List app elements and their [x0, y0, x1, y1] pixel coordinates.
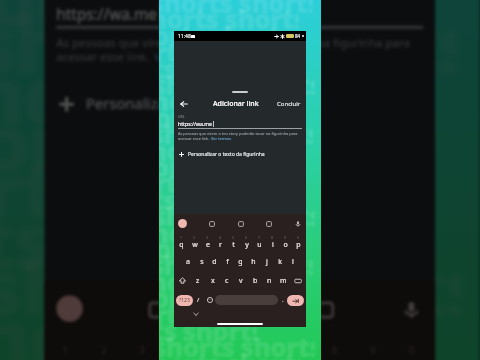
staticText: shorts shorts sh	[0, 135, 331, 239]
button[interactable]: 8	[317, 337, 355, 360]
button[interactable]: Shift	[174, 271, 190, 290]
button[interactable]: h	[247, 252, 260, 271]
button[interactable]: 1	[175, 233, 188, 252]
staticText: https://wa.me	[178, 120, 213, 127]
staticText: l	[292, 257, 294, 267]
staticText: 7	[293, 343, 302, 357]
staticText: g	[238, 257, 243, 267]
button[interactable]: c	[220, 271, 234, 290]
button[interactable]: v	[234, 271, 248, 290]
staticText: w	[192, 240, 198, 250]
button[interactable]: 2	[188, 233, 201, 252]
button[interactable]: l	[286, 252, 299, 271]
staticText: shorts shorts sh	[159, 51, 257, 86]
button[interactable]: 3	[201, 233, 214, 252]
staticText: shorts shorts sh	[159, 1, 299, 36]
staticText: d	[212, 257, 217, 267]
button[interactable]: 6	[240, 233, 253, 252]
staticText: shorts shorts sh	[159, 198, 315, 233]
staticText: shorts shorts sh	[159, 116, 313, 151]
staticText: 4	[219, 235, 222, 240]
button[interactable]: x	[205, 271, 220, 290]
staticText: shorts shorts sh	[0, 0, 456, 94]
button[interactable]: 6	[240, 337, 278, 360]
button[interactable]: Google	[56, 295, 83, 322]
staticText: r	[219, 240, 222, 250]
staticText: n	[267, 276, 272, 286]
button[interactable]: Settings	[264, 219, 273, 228]
staticText: ?123	[179, 297, 190, 304]
button[interactable]: k	[273, 252, 286, 271]
staticText: Adicionar link	[213, 99, 259, 109]
button[interactable]: Personalizar o texto da figurinha	[56, 85, 435, 121]
button[interactable]: Enter	[287, 295, 304, 306]
staticText: shorts shorts sh	[159, 149, 285, 184]
button[interactable]: Voz	[293, 219, 302, 228]
button[interactable]: /	[193, 290, 204, 310]
button[interactable]: Translate	[228, 295, 254, 322]
button[interactable]: Concluir	[277, 100, 301, 108]
button[interactable]: g	[234, 252, 247, 271]
button[interactable]: z	[190, 271, 205, 290]
button[interactable]: .	[278, 290, 287, 310]
staticText: 5	[232, 235, 235, 240]
button[interactable]: 4	[214, 233, 227, 252]
staticText: t	[216, 357, 225, 360]
button[interactable]: Backspace	[290, 271, 306, 290]
staticText: Personalizar o texto da figurinha	[86, 94, 314, 115]
staticText: 4	[178, 343, 186, 357]
button[interactable]: Settings	[311, 295, 337, 322]
button[interactable]: Espaço	[215, 295, 278, 305]
staticText: Personalizar o texto da figurinha	[188, 151, 265, 158]
staticText: 7	[258, 235, 261, 240]
button[interactable]: d	[208, 252, 221, 271]
button[interactable]: Translate	[236, 219, 245, 228]
staticText: e	[206, 240, 210, 250]
button[interactable]: Personalizar o texto da figurinha	[178, 148, 306, 160]
staticText: q	[179, 240, 184, 250]
staticText: 3	[206, 235, 209, 240]
button[interactable]: 0	[292, 233, 305, 252]
button[interactable]: ?123	[176, 295, 193, 306]
button[interactable]: 3	[124, 337, 163, 360]
staticText: a	[186, 257, 190, 267]
staticText: shorts shorts sh	[159, 346, 301, 360]
button[interactable]: j	[260, 252, 273, 271]
button[interactable]: Emoji	[204, 290, 215, 310]
button[interactable]: 9	[279, 233, 292, 252]
button[interactable]: 7	[278, 337, 317, 360]
staticText: shorts shorts sh	[159, 67, 315, 102]
button[interactable]: 8	[266, 233, 279, 252]
button[interactable]: Fechar teclado	[192, 310, 200, 318]
button[interactable]: m	[276, 271, 290, 290]
staticText: shorts shorts sh	[159, 83, 301, 118]
button[interactable]: 4	[163, 337, 201, 360]
button[interactable]: 7	[253, 233, 266, 252]
button[interactable]: s	[195, 252, 208, 271]
button[interactable]: Voltar	[174, 97, 194, 110]
button[interactable]: 5	[201, 337, 240, 360]
staticText: 8	[271, 235, 274, 240]
staticText: shorts shorts sh	[159, 182, 257, 217]
staticText: k	[278, 257, 282, 267]
button[interactable]: Clipboard	[142, 295, 169, 322]
staticText: 84	[295, 33, 301, 39]
staticText: 2	[193, 235, 196, 240]
staticText: shorts shorts sh	[159, 329, 315, 360]
button[interactable]: Clipboard	[207, 219, 216, 228]
button[interactable]: Google	[178, 219, 187, 228]
button[interactable]: 5	[227, 233, 240, 252]
button[interactable]: f	[221, 252, 234, 271]
button[interactable]: n	[262, 271, 276, 290]
staticText: shorts shorts sh	[0, 186, 290, 289]
button[interactable]: a	[181, 252, 195, 271]
button[interactable]: Voz	[397, 295, 423, 322]
button[interactable]: b	[248, 271, 262, 290]
